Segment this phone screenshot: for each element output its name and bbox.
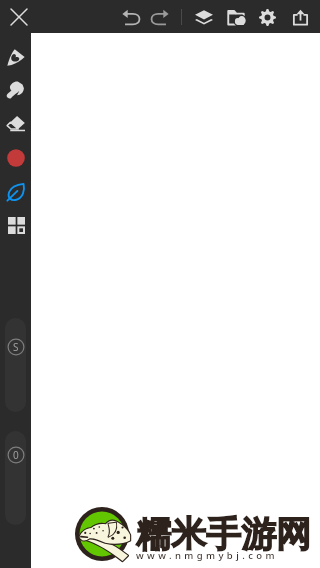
button[interactable]: Redo — [144, 2, 174, 32]
staticText: S — [13, 340, 19, 354]
button[interactable]: Brush — [1, 42, 31, 72]
button[interactable]: Color — [1, 143, 31, 173]
button[interactable]: Undo — [116, 2, 146, 32]
button[interactable]: Close — [4, 2, 34, 32]
button[interactable]: Leaf — [1, 177, 31, 207]
button[interactable]: Share — [285, 2, 315, 32]
button[interactable]: Grid — [1, 210, 31, 240]
button[interactable]: Eraser — [1, 109, 31, 139]
button[interactable]: Layers — [189, 2, 219, 32]
button[interactable]: Settings — [252, 2, 282, 32]
button[interactable]: Slider S — [5, 318, 26, 412]
button[interactable]: Slider 0 — [5, 431, 26, 525]
button[interactable]: Smudge — [1, 75, 31, 105]
button[interactable]: Gallery — [221, 2, 251, 32]
staticText: 0 — [13, 448, 19, 462]
staticText: 糯米手游网 — [136, 512, 311, 556]
staticText: www.nmgmybj.com — [136, 549, 278, 562]
